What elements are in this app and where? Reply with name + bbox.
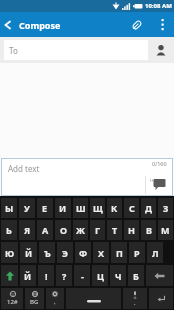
- staticText: С: [129, 202, 135, 214]
- button[interactable]: Ц: [92, 265, 108, 286]
- button[interactable]: Б: [128, 265, 144, 286]
- staticText: Г: [95, 224, 101, 236]
- button[interactable]: .: [123, 288, 147, 309]
- button[interactable]: О: [55, 220, 71, 240]
- button[interactable]: Н: [124, 220, 139, 240]
- button[interactable]: Ш: [73, 198, 88, 218]
- staticText: Р: [134, 247, 140, 259]
- button[interactable]: У: [19, 198, 35, 218]
- staticText: А: [42, 224, 49, 236]
- button[interactable]: [1, 265, 18, 286]
- staticText: Й: [24, 270, 32, 282]
- button[interactable]: Ъ: [39, 242, 55, 263]
- button[interactable]: 12#: [1, 288, 23, 309]
- button[interactable]: Add text: [1, 158, 173, 196]
- button[interactable]: М: [158, 220, 173, 240]
- button[interactable]: [149, 288, 173, 309]
- staticText: У: [24, 202, 30, 214]
- staticText: Щ: [93, 202, 103, 214]
- button[interactable]: С: [124, 198, 139, 218]
- button[interactable]: [148, 37, 174, 63]
- staticText: Ъ: [44, 247, 51, 259]
- staticText: Й: [25, 247, 33, 259]
- staticText: Д: [145, 202, 152, 214]
- button[interactable]: [0, 12, 16, 37]
- button[interactable]: Х: [93, 242, 109, 263]
- staticText: Ж: [76, 224, 85, 236]
- staticText: 12#: [7, 298, 18, 306]
- button[interactable]: To: [4, 40, 148, 60]
- staticText: П: [116, 247, 123, 259]
- button[interactable]: Ж: [73, 220, 88, 240]
- staticText: Н: [128, 224, 135, 236]
- button[interactable]: А: [37, 220, 53, 240]
- staticText: И: [59, 202, 67, 214]
- staticText: М: [161, 224, 170, 236]
- staticText: Ш: [76, 202, 86, 214]
- button[interactable]: Р: [129, 242, 145, 263]
- staticText: Compose: [19, 19, 61, 31]
- staticText: Е: [42, 202, 48, 214]
- staticText: ,: [54, 298, 56, 306]
- button[interactable]: ,: [46, 288, 64, 309]
- staticText: ?: [62, 270, 67, 282]
- button[interactable]: Я: [19, 220, 35, 240]
- button[interactable]: Э: [57, 242, 73, 263]
- staticText: З: [163, 202, 169, 214]
- staticText: Ф: [79, 247, 88, 259]
- staticText: К: [111, 202, 118, 214]
- button[interactable]: П: [111, 242, 127, 263]
- button[interactable]: Л: [147, 242, 163, 263]
- staticText: To: [9, 45, 18, 56]
- button[interactable]: В: [141, 220, 156, 240]
- staticText: Б: [133, 270, 139, 282]
- button[interactable]: И: [55, 198, 71, 218]
- button[interactable]: ?: [56, 265, 72, 286]
- staticText: Ц: [97, 270, 104, 282]
- button[interactable]: Й: [20, 242, 37, 263]
- button[interactable]: [150, 12, 174, 37]
- staticText: В: [146, 224, 152, 236]
- button[interactable]: Ч: [110, 265, 126, 286]
- staticText: Ч: [115, 270, 122, 282]
- button[interactable]: Ф: [75, 242, 91, 263]
- staticText: Ы: [5, 202, 14, 214]
- staticText: Х: [98, 247, 105, 259]
- button[interactable]: [146, 265, 173, 286]
- button[interactable]: Т: [107, 220, 122, 240]
- staticText: !: [45, 270, 48, 282]
- button[interactable]: [124, 12, 150, 37]
- staticText: Ь: [6, 224, 12, 236]
- staticText: Add text: [8, 163, 40, 174]
- staticText: -: [81, 270, 84, 282]
- staticText: 0/160: [152, 160, 167, 167]
- button[interactable]: !: [38, 265, 54, 286]
- staticText: Э: [62, 247, 68, 259]
- staticText: 10:08 AM: [145, 2, 172, 10]
- button[interactable]: К: [107, 198, 122, 218]
- staticText: Л: [152, 247, 159, 259]
- staticText: Я: [24, 224, 31, 236]
- staticText: .: [134, 299, 136, 307]
- button[interactable]: Г: [90, 220, 105, 240]
- button[interactable]: -: [74, 265, 90, 286]
- staticText: BG: [30, 298, 39, 306]
- staticText: Ю: [5, 247, 15, 259]
- staticText: Т: [112, 224, 118, 236]
- button[interactable]: З: [158, 198, 173, 218]
- button[interactable]: [66, 288, 121, 309]
- button[interactable]: Ю: [1, 242, 18, 263]
- staticText: О: [60, 224, 67, 236]
- button[interactable]: BG: [25, 288, 44, 309]
- button[interactable]: Ь: [1, 220, 17, 240]
- button[interactable]: Й: [20, 265, 36, 286]
- button[interactable]: Д: [141, 198, 156, 218]
- button[interactable]: Е: [37, 198, 53, 218]
- button[interactable]: Щ: [90, 198, 105, 218]
- button[interactable]: Ы: [1, 198, 17, 218]
